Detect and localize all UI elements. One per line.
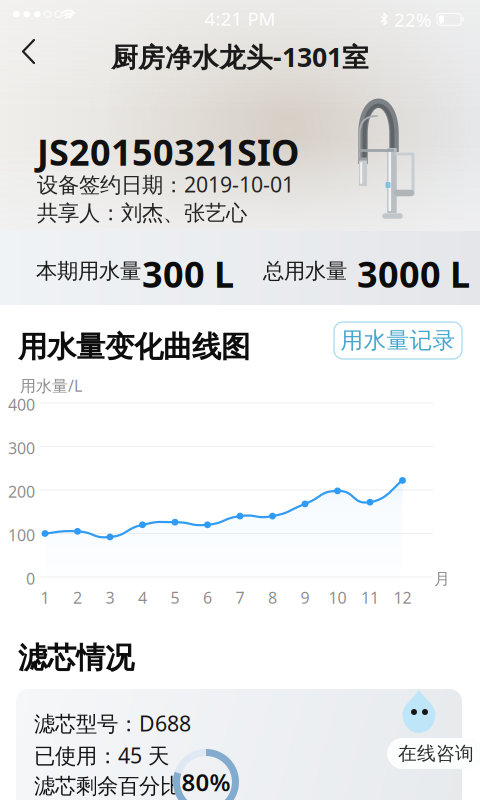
- staticText: 设备签约日期：2019-10-01: [37, 170, 294, 198]
- staticText: 80%: [181, 766, 230, 798]
- staticText: 0: [26, 568, 35, 589]
- staticText: 10: [328, 587, 346, 608]
- staticText: 4:21 PM: [204, 6, 275, 31]
- staticText: 11: [361, 587, 379, 608]
- staticText: 400: [8, 394, 35, 415]
- staticText: 9: [300, 587, 309, 608]
- staticText: 已使用：45 天: [34, 741, 169, 769]
- staticText: JS20150321SIO: [37, 128, 299, 176]
- staticText: 滤芯情况: [18, 640, 134, 676]
- staticText: 4: [138, 587, 147, 608]
- staticText: 1: [40, 587, 49, 608]
- staticText: 3: [105, 587, 114, 608]
- button[interactable]: 在线咨询: [384, 688, 476, 762]
- staticText: 6: [203, 587, 212, 608]
- staticText: 滤芯剩余百分比: [34, 773, 181, 799]
- staticText: 200: [8, 481, 35, 502]
- staticText: 用水量/L: [20, 375, 82, 396]
- staticText: 5: [170, 587, 179, 608]
- staticText: 2: [73, 587, 82, 608]
- staticText: 300 L: [142, 250, 234, 298]
- staticText: 300: [8, 437, 35, 459]
- staticText: 在线咨询: [398, 742, 474, 765]
- staticText: 8: [268, 587, 277, 608]
- staticText: 12: [393, 587, 411, 608]
- button[interactable]: 用水量记录: [334, 322, 462, 359]
- staticText: 滤芯型号：D688: [34, 709, 191, 737]
- staticText: 7: [235, 587, 244, 608]
- staticText: 月: [434, 569, 450, 589]
- staticText: 厨房净水龙头-1301室: [111, 39, 369, 74]
- staticText: 用水量变化曲线图: [18, 329, 250, 365]
- staticText: 100: [8, 524, 35, 546]
- staticText: 总用水量: [263, 258, 347, 284]
- staticText: 3000 L: [357, 250, 470, 298]
- staticText: 本期用水量: [36, 258, 141, 284]
- button[interactable]: Back: [5, 29, 52, 74]
- staticText: 22%: [394, 7, 432, 32]
- staticText: 共享人：刘杰、张艺心: [37, 200, 247, 226]
- staticText: 用水量记录: [340, 327, 455, 354]
